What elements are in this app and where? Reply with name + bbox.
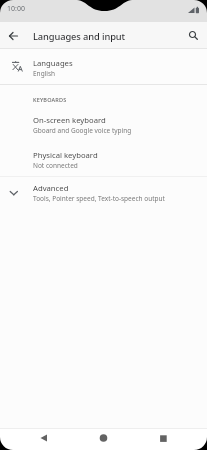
button[interactable] bbox=[95, 430, 111, 446]
button[interactable] bbox=[156, 430, 172, 446]
staticText: 10:00 bbox=[7, 4, 25, 14]
staticText: English bbox=[33, 69, 56, 78]
button[interactable]: Physical keyboard bbox=[0, 143, 207, 176]
button[interactable] bbox=[36, 430, 52, 446]
staticText: Languages bbox=[33, 58, 73, 68]
staticText: Gboard and Google voice typing bbox=[33, 126, 132, 135]
staticText: Advanced bbox=[33, 183, 69, 193]
button[interactable]: Advanced bbox=[0, 177, 207, 206]
button[interactable]: Languages bbox=[0, 49, 207, 84]
button[interactable]: On-screen keyboard bbox=[0, 108, 207, 141]
staticText: Tools, Pointer speed, Text-to-speech out… bbox=[33, 194, 165, 203]
staticText: Not connected bbox=[33, 161, 78, 170]
staticText: Physical keyboard bbox=[33, 150, 98, 160]
button[interactable] bbox=[185, 27, 202, 44]
button[interactable] bbox=[4, 26, 22, 44]
staticText: Languages and input bbox=[33, 30, 125, 43]
staticText: KEYBOARDS bbox=[33, 96, 67, 103]
staticText: On-screen keyboard bbox=[33, 115, 106, 125]
